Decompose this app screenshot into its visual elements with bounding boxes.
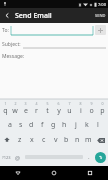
staticText: SEND <box>95 13 106 18</box>
button[interactable]: Navigate up <box>0 8 15 23</box>
button[interactable]: d <box>26 117 37 132</box>
button[interactable]: 7 <box>64 100 75 117</box>
staticText: t <box>46 106 49 116</box>
button[interactable]: 9 <box>86 100 97 117</box>
staticText: 8 <box>79 101 82 106</box>
button[interactable] <box>11 26 93 35</box>
staticText: @ <box>15 154 20 161</box>
button[interactable]: ?123 <box>0 148 13 166</box>
button[interactable]: Backspace <box>94 132 108 148</box>
button[interactable]: c <box>38 132 50 148</box>
staticText: g <box>51 120 56 130</box>
staticText: 2 <box>14 101 17 106</box>
staticText: Send Email <box>15 11 52 21</box>
button[interactable]: n <box>72 132 83 148</box>
staticText: u <box>67 106 72 116</box>
staticText: ?123 <box>2 155 11 160</box>
button[interactable]: @ <box>13 148 22 166</box>
button[interactable]: Shift <box>0 132 14 148</box>
button[interactable]: 1 <box>0 100 10 117</box>
staticText: z <box>18 135 22 145</box>
button[interactable]: 8 <box>75 100 86 117</box>
staticText: p <box>100 106 105 116</box>
staticText: n <box>75 135 80 145</box>
button[interactable]: Back <box>0 166 36 180</box>
button[interactable]: 5 <box>42 100 53 117</box>
staticText: 9 <box>90 101 93 106</box>
staticText: x <box>30 135 34 145</box>
staticText: q <box>3 106 8 116</box>
staticText: 7 <box>68 101 71 106</box>
button[interactable]: Enter <box>93 148 108 166</box>
button[interactable]: Space <box>22 148 85 166</box>
staticText: m <box>85 135 92 145</box>
button[interactable]: Recents <box>72 166 108 180</box>
button[interactable]: 6 <box>53 100 64 117</box>
staticText: l <box>97 120 99 130</box>
button[interactable]: 4 <box>31 100 42 117</box>
staticText: j <box>75 120 77 130</box>
staticText: s <box>19 120 23 130</box>
staticText: 4 <box>35 101 38 106</box>
staticText: h <box>62 120 67 130</box>
staticText: f <box>41 120 44 130</box>
staticText: b <box>64 135 69 145</box>
staticText: c <box>42 135 46 145</box>
staticText: 7:00 <box>98 2 106 7</box>
staticText: Subject: <box>2 41 21 48</box>
button[interactable]: Add recipient <box>95 25 106 35</box>
button[interactable]: v <box>50 132 61 148</box>
staticText: d <box>29 120 34 130</box>
staticText: 3 <box>24 101 27 106</box>
button[interactable]: 3 <box>20 100 31 117</box>
button[interactable]: h <box>59 117 70 132</box>
staticText: o <box>89 106 94 116</box>
button[interactable]: a <box>5 117 15 132</box>
staticText: i <box>80 106 82 116</box>
button[interactable]: b <box>61 132 72 148</box>
staticText: 1 <box>4 101 7 106</box>
staticText: a <box>8 120 12 130</box>
staticText: k <box>85 120 89 130</box>
staticText: v <box>54 135 58 145</box>
button[interactable]: Home <box>36 166 72 180</box>
staticText: Message: <box>2 53 25 60</box>
button[interactable]: m <box>83 132 94 148</box>
button[interactable]: 0 <box>97 100 108 117</box>
button[interactable]: x <box>26 132 38 148</box>
staticText: 6 <box>57 101 60 106</box>
button[interactable]: k <box>81 117 92 132</box>
button[interactable]: l <box>92 117 103 132</box>
staticText: y <box>57 106 61 116</box>
staticText: e <box>24 106 28 116</box>
button[interactable]: Send <box>92 8 108 23</box>
button[interactable]: . <box>85 148 93 166</box>
button[interactable]: s <box>15 117 26 132</box>
button[interactable]: g <box>48 117 59 132</box>
button[interactable]: f <box>37 117 48 132</box>
staticText: . <box>88 153 90 161</box>
staticText: 5 <box>46 101 49 106</box>
staticText: To: <box>2 27 9 34</box>
button[interactable]: 2 <box>10 100 20 117</box>
staticText: r <box>35 106 38 116</box>
staticText: w <box>12 106 18 116</box>
staticText: 0 <box>101 101 104 106</box>
button[interactable]: j <box>70 117 81 132</box>
button[interactable]: Message: <box>0 51 108 99</box>
button[interactable] <box>23 40 106 48</box>
button[interactable]: z <box>14 132 26 148</box>
